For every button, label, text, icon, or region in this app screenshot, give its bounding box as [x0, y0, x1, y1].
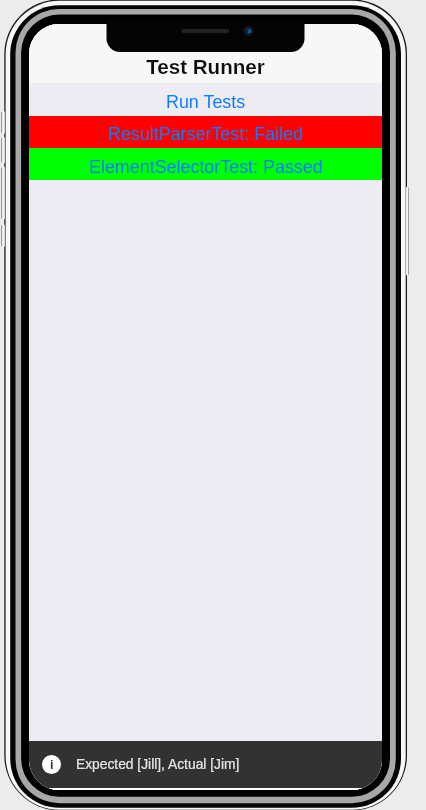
staticText: Run Tests	[166, 92, 246, 112]
staticText: Test Runner	[29, 55, 382, 78]
button[interactable]: Run Tests	[29, 83, 382, 116]
button[interactable]: ResultParserTest: Failed	[29, 116, 382, 148]
staticText: i	[50, 757, 54, 772]
staticText: ElementSelectorTest: Passed	[89, 157, 323, 177]
staticText: Expected [Jill], Actual [Jim]	[76, 757, 240, 772]
button[interactable]: ElementSelectorTest: Passed	[29, 148, 382, 180]
staticText: ResultParserTest: Failed	[108, 124, 303, 144]
